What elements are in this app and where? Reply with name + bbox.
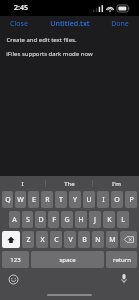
staticText: J [94, 215, 96, 225]
button[interactable]: B [78, 231, 90, 248]
staticText: space [59, 256, 76, 264]
staticText: R [45, 195, 50, 205]
button[interactable]: I [97, 191, 109, 208]
button[interactable]: 123 [2, 251, 29, 268]
button[interactable]: Y [69, 191, 81, 208]
button[interactable]: S [22, 211, 33, 228]
staticText: E [32, 195, 36, 205]
button[interactable]: R [41, 191, 53, 208]
staticText: T [59, 195, 63, 205]
button[interactable]: O [111, 191, 123, 208]
staticText: Y [73, 195, 77, 205]
staticText: iFiles supports dark mode now [6, 50, 93, 58]
button[interactable]: Create and edit text files. [0, 32, 139, 176]
staticText: 2:45 [14, 3, 28, 13]
staticText: M [109, 235, 116, 245]
button[interactable]: Untitled.txt [44, 17, 96, 31]
button[interactable]: J [89, 211, 101, 228]
staticText: S [26, 215, 30, 225]
staticText: U [86, 195, 92, 205]
staticText: Q [5, 195, 11, 205]
staticText: A [12, 215, 17, 225]
button[interactable]: return [106, 251, 137, 268]
button[interactable]: A [9, 211, 20, 228]
button[interactable]: U [83, 191, 95, 208]
button[interactable]: Close [0, 17, 38, 31]
staticText: I'm [112, 180, 121, 188]
staticText: V [68, 235, 73, 245]
staticText: 123 [10, 256, 21, 264]
button[interactable]: I'm [93, 176, 139, 191]
staticText: F [52, 215, 56, 225]
button[interactable]: Dictation [118, 273, 130, 285]
button[interactable]: Done [101, 17, 139, 31]
button[interactable]: C [50, 231, 62, 248]
button[interactable]: V [64, 231, 76, 248]
button[interactable]: Shift [2, 231, 20, 248]
button[interactable]: The [46, 176, 92, 191]
button[interactable]: X [36, 231, 48, 248]
staticText: Z [26, 235, 31, 245]
staticText: P [129, 195, 134, 205]
button[interactable]: I [0, 176, 45, 191]
button[interactable]: E [28, 191, 39, 208]
staticText: H [78, 215, 84, 225]
staticText: return [113, 256, 131, 264]
button[interactable]: M [106, 231, 118, 248]
staticText: X [40, 235, 45, 245]
staticText: B [82, 235, 87, 245]
staticText: D [38, 215, 44, 225]
staticText: W [17, 195, 24, 205]
staticText: L [121, 215, 125, 225]
staticText: Create and edit text files. [6, 36, 77, 44]
button[interactable]: Z [22, 231, 34, 248]
staticText: O [114, 195, 120, 205]
staticText: I [21, 180, 24, 188]
staticText: Done [111, 19, 129, 29]
button[interactable]: G [61, 211, 73, 228]
staticText: Untitled.txt [50, 19, 90, 29]
staticText: K [107, 215, 112, 225]
button[interactable]: W [15, 191, 26, 208]
staticText: G [64, 215, 70, 225]
button[interactable]: Backspace [120, 231, 137, 248]
staticText: C [54, 235, 59, 245]
button[interactable]: F [48, 211, 59, 228]
button[interactable]: N [92, 231, 104, 248]
staticText: The [64, 180, 75, 188]
staticText: Close [10, 19, 28, 29]
button[interactable]: Q [2, 191, 13, 208]
button[interactable]: T [55, 191, 67, 208]
button[interactable]: P [125, 191, 137, 208]
button[interactable]: H [75, 211, 87, 228]
button[interactable]: space [31, 251, 104, 268]
button[interactable]: L [117, 211, 129, 228]
button[interactable]: D [35, 211, 46, 228]
button[interactable]: K [103, 211, 115, 228]
button[interactable]: Emoji [7, 273, 19, 285]
staticText: N [95, 235, 101, 245]
staticText: I [102, 195, 105, 205]
